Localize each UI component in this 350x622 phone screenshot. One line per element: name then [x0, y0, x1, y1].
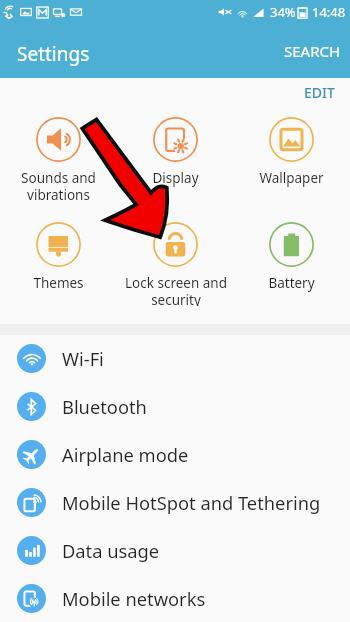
- staticText: Mobile HotSpot and Tethering: [62, 490, 321, 515]
- button[interactable]: Lock screen and security: [117, 216, 234, 300]
- button[interactable]: Mobile networks: [0, 574, 350, 622]
- staticText: Airplane mode: [62, 442, 189, 467]
- staticText: Battery: [268, 274, 315, 292]
- button[interactable]: SEARCH: [273, 36, 350, 66]
- button[interactable]: Battery: [233, 216, 350, 300]
- staticText: EDIT: [304, 83, 335, 102]
- staticText: Settings: [17, 41, 90, 67]
- staticText: Wallpaper: [259, 169, 324, 187]
- staticText: Mobile networks: [62, 586, 206, 611]
- staticText: Display: [152, 169, 199, 187]
- staticText: Themes: [33, 274, 84, 292]
- button[interactable]: Mobile HotSpot and Tethering: [0, 478, 350, 526]
- staticText: Bluetooth: [62, 394, 147, 419]
- button[interactable]: EDIT: [296, 78, 343, 107]
- staticText: Lock screen and security: [125, 274, 227, 306]
- staticText: 14:48: [312, 3, 346, 21]
- staticText: Data usage: [62, 538, 160, 563]
- button[interactable]: Themes: [0, 216, 117, 300]
- button[interactable]: Data usage: [0, 526, 350, 574]
- button[interactable]: Display: [117, 111, 234, 195]
- staticText: 34%: [270, 3, 296, 21]
- button[interactable]: Wallpaper: [233, 111, 350, 195]
- staticText: SEARCH: [284, 41, 341, 61]
- staticText: Wi-Fi: [62, 346, 104, 371]
- button[interactable]: Sounds and vibrations: [0, 111, 117, 195]
- button[interactable]: Airplane mode: [0, 430, 350, 478]
- staticText: Sounds and vibrations: [21, 169, 96, 201]
- button[interactable]: Wi-Fi: [0, 334, 350, 382]
- button[interactable]: Bluetooth: [0, 382, 350, 430]
